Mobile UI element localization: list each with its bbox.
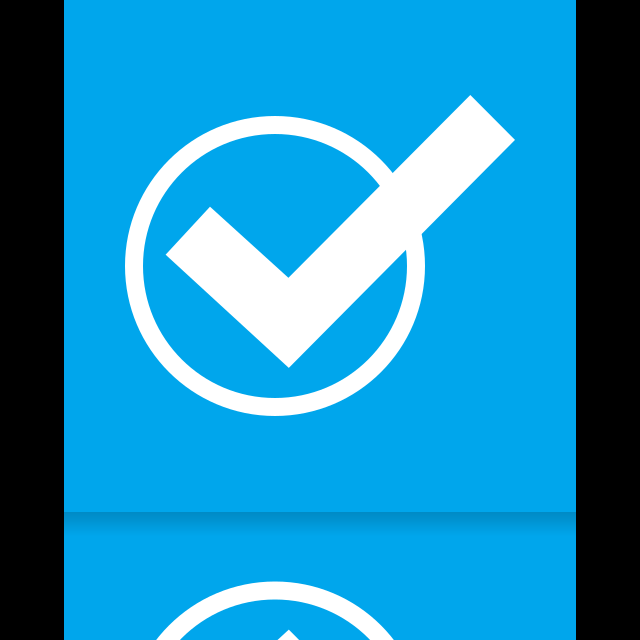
button[interactable]: Open app <box>64 0 576 640</box>
